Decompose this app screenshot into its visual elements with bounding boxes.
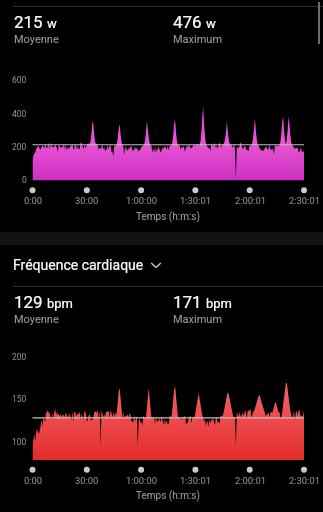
staticText: 30:00 <box>75 475 99 486</box>
staticText: 1:00:00 <box>126 195 157 206</box>
staticText: 2:30:01 <box>289 475 320 486</box>
staticText: 100 <box>12 437 27 447</box>
staticText: 2:00:01 <box>235 195 266 206</box>
staticText: Maximum <box>173 33 223 46</box>
staticText: bpm <box>47 296 73 311</box>
staticText: 400 <box>12 109 27 119</box>
staticText: 171 <box>173 292 202 312</box>
staticText: 0:00 <box>24 195 43 206</box>
staticText: Temps (h:m:s) <box>136 490 200 502</box>
staticText: 200 <box>12 142 27 152</box>
staticText: 600 <box>12 75 27 85</box>
staticText: Fréquence cardiaque <box>13 257 144 273</box>
staticText: 1:00:00 <box>126 475 157 486</box>
staticText: Maximum <box>173 313 223 326</box>
staticText: w <box>206 16 216 31</box>
button[interactable]: Fréquence cardiaque <box>0 252 323 278</box>
staticText: 200 <box>12 352 27 362</box>
staticText: 2:00:01 <box>235 475 266 486</box>
staticText: bpm <box>206 296 232 311</box>
staticText: w <box>47 16 57 31</box>
staticText: 30:00 <box>75 195 99 206</box>
staticText: 1:30:01 <box>180 475 211 486</box>
staticText: 150 <box>12 394 27 404</box>
staticText: 2:30:01 <box>289 195 320 206</box>
staticText: Moyenne <box>14 313 59 326</box>
staticText: 1:30:01 <box>180 195 211 206</box>
staticText: 215 <box>14 12 43 32</box>
staticText: 0:00 <box>24 475 43 486</box>
staticText: 129 <box>14 292 43 312</box>
staticText: 476 <box>173 12 202 32</box>
staticText: Temps (h:m:s) <box>136 211 200 223</box>
staticText: Moyenne <box>14 33 59 46</box>
staticText: 0 <box>22 175 27 185</box>
